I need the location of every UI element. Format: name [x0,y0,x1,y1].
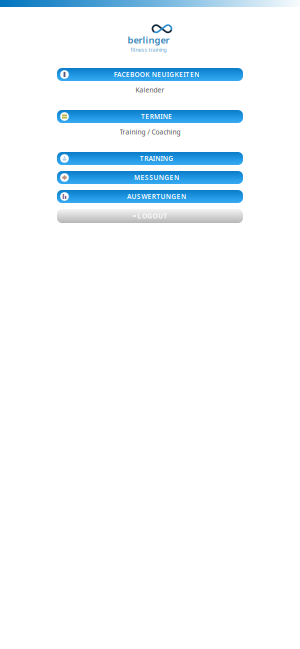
staticText: LOGOUT [137,212,167,220]
button[interactable]: TERMINE [57,110,243,123]
staticText: berlinger [127,34,169,46]
button[interactable]: MESSUNGEN [57,171,243,184]
staticText: MESSUNGEN [134,173,179,182]
button[interactable]: TRAINING [57,152,243,165]
staticText: FACEBOOK NEUIGKEITEN [114,70,199,79]
button[interactable]: AUSWERTUNGEN [57,190,243,203]
staticText: TERMINE [141,112,172,121]
button[interactable]: LOGOUT [57,209,243,223]
staticText: Kalender [135,86,164,94]
button[interactable]: FACEBOOK NEUIGKEITEN [57,68,243,81]
staticText: AUSWERTUNGEN [127,192,186,201]
staticText: fitness training [130,46,166,53]
staticText: Training / Coaching [119,128,180,136]
staticText: TRAINING [140,154,173,163]
